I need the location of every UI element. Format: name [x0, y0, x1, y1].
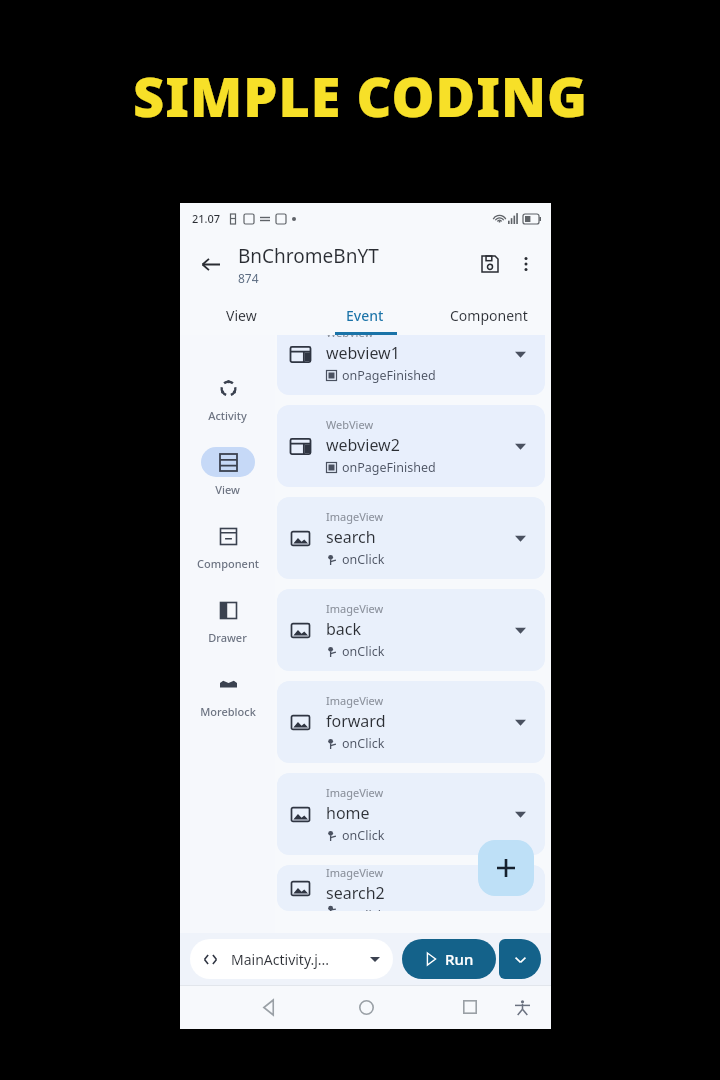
staticText: WebView [326, 335, 374, 340]
button[interactable]: Back [192, 246, 228, 282]
button[interactable]: Home [347, 988, 385, 1026]
staticText: Drawer [208, 630, 247, 645]
button[interactable]: Expand [508, 802, 532, 826]
button[interactable]: Expand [508, 710, 532, 734]
staticText: MainActivity.j... [231, 950, 370, 969]
staticText: ImageView [326, 693, 384, 708]
staticText: onPageFinished [342, 367, 436, 384]
button[interactable]: Run options [499, 939, 541, 979]
staticText: onClick [342, 551, 385, 568]
button[interactable]: WebView [277, 405, 545, 487]
button[interactable]: Drawer [180, 595, 275, 645]
staticText: SIMPLE CODING [133, 59, 588, 133]
staticText: ImageView [326, 509, 384, 524]
staticText: onClick [342, 735, 385, 752]
button[interactable]: WebView [277, 335, 545, 395]
staticText: search2 [326, 882, 385, 904]
staticText: home [326, 802, 370, 824]
button[interactable]: Expand [508, 342, 532, 366]
staticText: Activity [208, 408, 247, 423]
staticText: WebView [326, 417, 374, 432]
staticText: webview2 [326, 434, 400, 456]
button[interactable]: ImageView [277, 773, 545, 855]
staticText: Component [450, 306, 528, 325]
staticText: ImageView [326, 865, 384, 880]
button[interactable]: Expand [508, 876, 532, 900]
staticText: onPageFinished [342, 459, 436, 476]
button[interactable]: Expand [508, 434, 532, 458]
button[interactable]: Recents [451, 988, 489, 1026]
button[interactable]: Activity [180, 373, 275, 423]
button[interactable]: MainActivity.j... [190, 939, 393, 979]
staticText: webview1 [326, 342, 400, 364]
button[interactable]: ImageView [277, 589, 545, 671]
button[interactable]: Component [180, 521, 275, 571]
staticText: ImageView [326, 785, 384, 800]
staticText: forward [326, 710, 386, 732]
button[interactable]: Back [250, 988, 288, 1026]
staticText: 21.07 [192, 211, 221, 226]
button[interactable]: View [180, 447, 275, 497]
button[interactable]: Save [471, 245, 509, 283]
staticText: back [326, 618, 362, 640]
button[interactable]: ImageView [277, 865, 545, 911]
button[interactable]: Expand [508, 526, 532, 550]
staticText: 874 [238, 270, 259, 286]
staticText: View [226, 306, 257, 325]
staticText: Event [346, 306, 384, 325]
staticText: Component [197, 556, 259, 571]
staticText: onClick [342, 827, 385, 844]
button[interactable]: Component [427, 295, 551, 335]
button[interactable]: Moreblock [180, 669, 275, 719]
button[interactable]: Accessibility [505, 990, 539, 1024]
staticText: BnChromeBnYT [238, 243, 379, 269]
button[interactable]: Event [303, 295, 427, 335]
button[interactable]: View [180, 295, 303, 335]
staticText: View [215, 482, 240, 497]
staticText: ImageView [326, 601, 384, 616]
button[interactable]: Add [478, 840, 534, 896]
staticText: Moreblock [200, 704, 256, 719]
staticText: onClick [342, 643, 385, 660]
button[interactable]: More options [509, 247, 543, 281]
staticText: search [326, 526, 376, 548]
button[interactable]: Expand [508, 618, 532, 642]
button[interactable]: ImageView [277, 681, 545, 763]
button[interactable]: ImageView [277, 497, 545, 579]
staticText: Run [445, 949, 474, 969]
staticText: onClick [342, 907, 385, 911]
button[interactable]: Run [402, 939, 496, 979]
